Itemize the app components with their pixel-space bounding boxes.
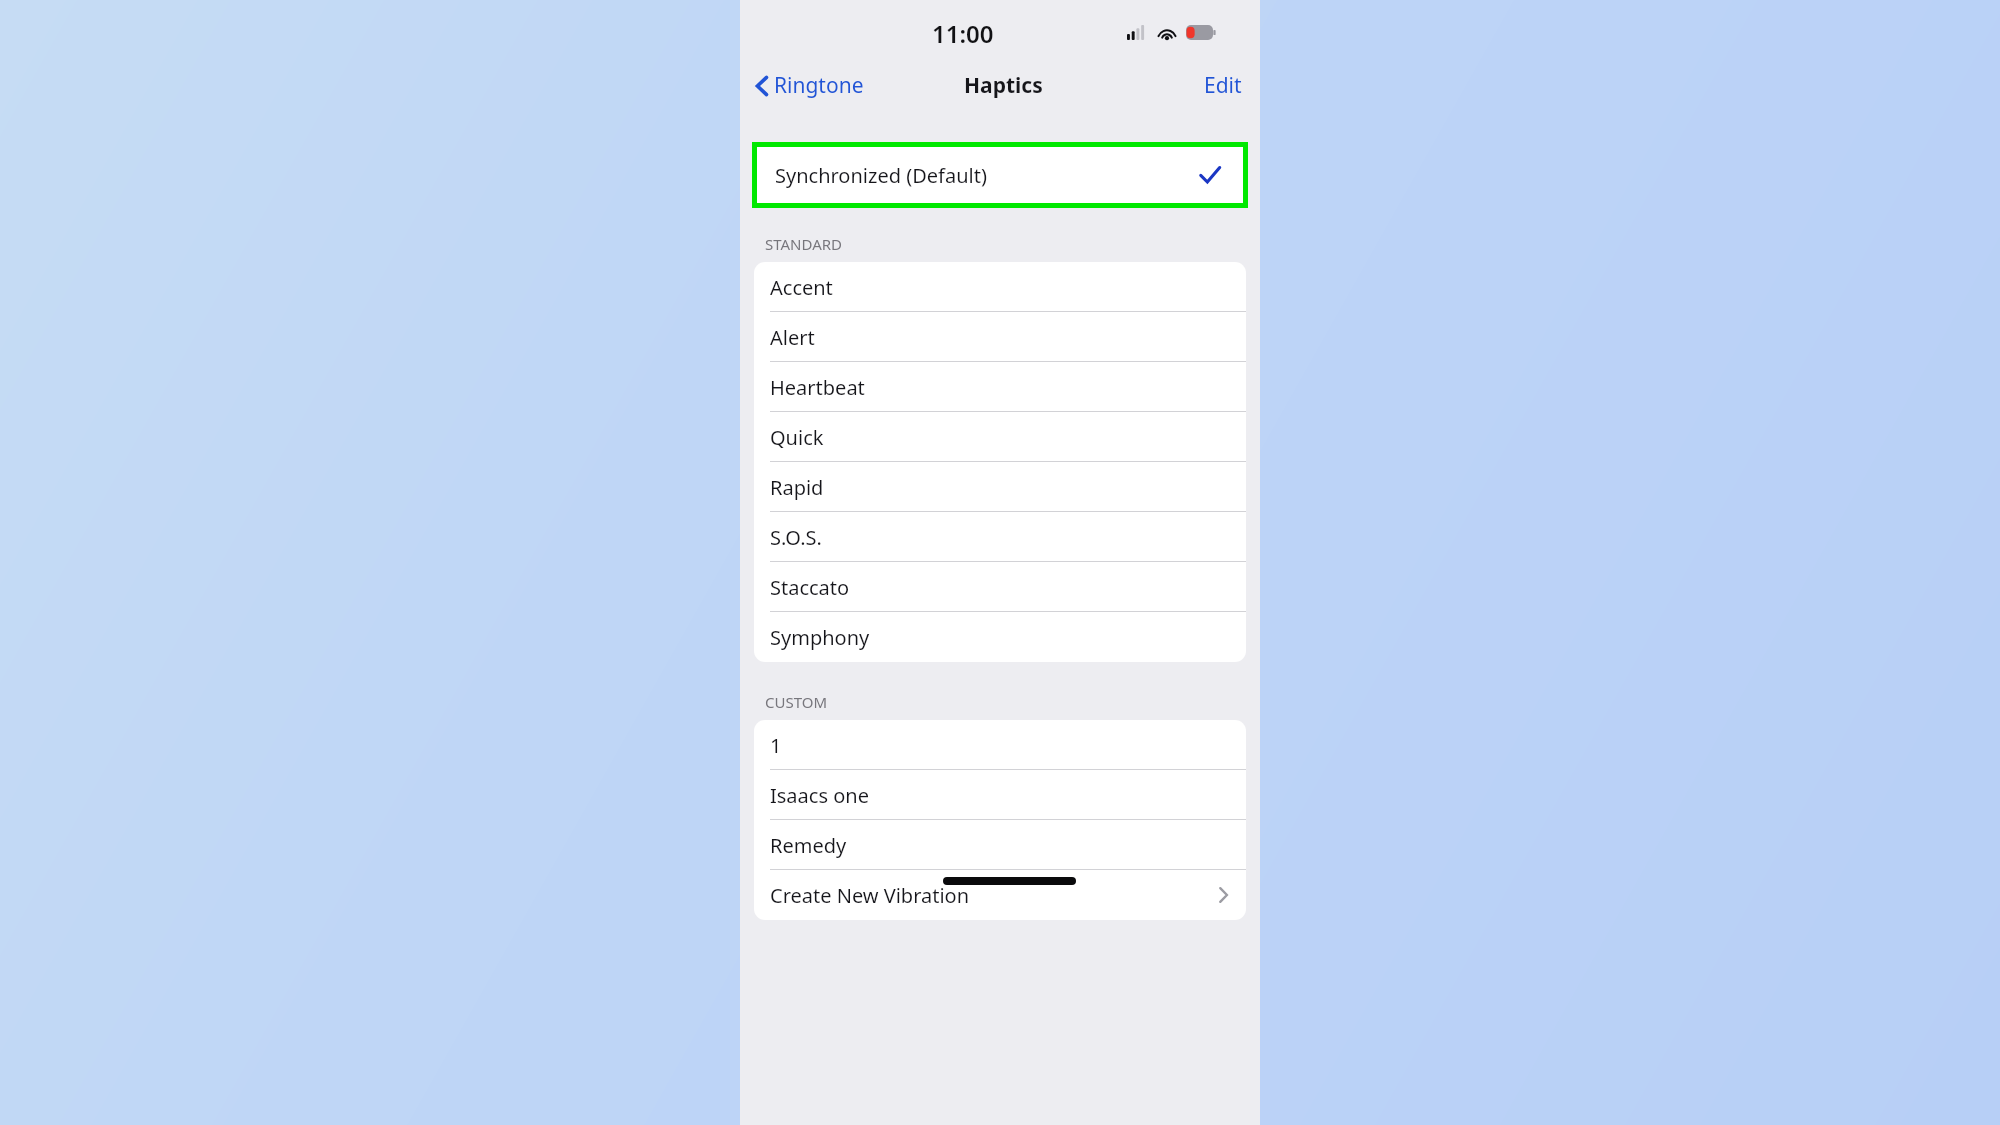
button[interactable]: Create New Vibration — [754, 870, 1246, 920]
staticText: Remedy — [770, 832, 847, 859]
staticText: Heartbeat — [770, 374, 865, 401]
button[interactable]: Quick — [754, 412, 1246, 462]
staticText: Isaacs one — [770, 782, 869, 809]
staticText: 1 — [770, 732, 782, 759]
staticText: CUSTOM — [765, 692, 828, 712]
staticText: Ringtone — [774, 71, 864, 100]
staticText: STANDARD — [765, 234, 843, 254]
staticText: Rapid — [770, 474, 824, 501]
staticText: Accent — [770, 274, 833, 301]
staticText: Edit — [1204, 71, 1242, 100]
other: Open Create New Vibration — [1219, 887, 1228, 903]
staticText: Alert — [770, 324, 815, 351]
button[interactable]: Accent — [754, 262, 1246, 312]
button[interactable]: Ringtone — [753, 67, 867, 104]
button[interactable]: Isaacs one — [754, 770, 1246, 820]
button[interactable]: Staccato — [754, 562, 1246, 612]
staticText: Quick — [770, 424, 824, 451]
button[interactable]: Rapid — [754, 462, 1246, 512]
staticText: Staccato — [770, 574, 850, 601]
staticText: Symphony — [770, 624, 870, 651]
staticText: 11:00 — [932, 17, 994, 50]
staticText: Create New Vibration — [770, 882, 970, 909]
button[interactable]: Symphony — [754, 612, 1246, 662]
button[interactable]: Alert — [754, 312, 1246, 362]
button[interactable]: Remedy — [754, 820, 1246, 870]
button[interactable]: Heartbeat — [754, 362, 1246, 412]
staticText: S.O.S. — [770, 524, 822, 551]
staticText: Synchronized (Default) — [775, 162, 987, 189]
button[interactable]: 1 — [754, 720, 1246, 770]
staticText: Haptics — [964, 71, 1043, 100]
button[interactable]: Synchronized (Default) — [757, 147, 1243, 203]
button[interactable]: S.O.S. — [754, 512, 1246, 562]
button[interactable]: Edit — [1200, 67, 1246, 104]
